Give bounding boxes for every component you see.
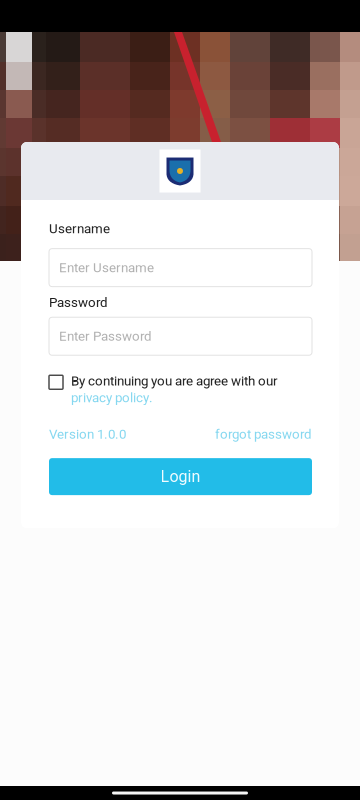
staticText: forgot password — [215, 426, 312, 442]
staticText: Enter Password — [59, 328, 152, 344]
staticText: privacy policy. — [71, 390, 153, 405]
staticText: Enter Username — [59, 260, 154, 275]
staticText: Username — [49, 221, 110, 237]
button[interactable]: Login — [49, 458, 312, 495]
button[interactable]: By continuing you are agree with our — [49, 373, 312, 405]
staticText: Login — [160, 467, 200, 486]
staticText: Version 1.0.0 — [49, 426, 126, 442]
button[interactable]: forgot password — [215, 426, 312, 442]
staticText: By continuing you are agree with our — [71, 373, 278, 389]
button[interactable]: Version 1.0.0 — [49, 426, 126, 442]
staticText: Password — [49, 295, 108, 310]
